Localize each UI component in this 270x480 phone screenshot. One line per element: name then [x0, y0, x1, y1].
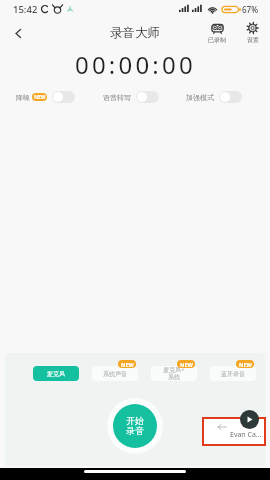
button[interactable]: Back — [6, 21, 30, 45]
button[interactable]: 降噪 — [16, 91, 75, 103]
other: Collapse — [217, 422, 227, 432]
staticText: 开始 录音 — [126, 415, 144, 437]
button[interactable]: 设置 — [244, 21, 261, 45]
staticText: 00:00:00 — [75, 48, 196, 76]
staticText: NEW — [34, 94, 46, 101]
staticText: 麦克风+ 系统 — [163, 366, 185, 381]
staticText: NEW — [121, 361, 134, 368]
button[interactable]: 语音转写 — [103, 91, 159, 103]
staticText: 语音转写 — [103, 93, 131, 102]
staticText: 录音大师 — [110, 25, 160, 41]
staticText: NEW — [180, 361, 193, 368]
button[interactable]: Play — [240, 410, 259, 429]
staticText: Evan Ca... — [230, 430, 262, 440]
staticText: 67% — [242, 4, 258, 15]
button[interactable]: 加强模式 — [186, 91, 242, 103]
staticText: NEW — [239, 361, 252, 368]
button[interactable]: 开始 录音 — [113, 404, 157, 448]
button[interactable]: Collapse — [204, 419, 264, 444]
button[interactable]: 蓝牙录音 — [210, 366, 256, 381]
button[interactable]: 系统声音 — [92, 366, 138, 381]
button[interactable]: 麦克风+ 系统 — [151, 366, 197, 381]
staticText: 系统声音 — [103, 370, 127, 378]
staticText: 降噪 — [16, 93, 30, 102]
staticText: 加强模式 — [186, 93, 214, 102]
button[interactable]: 麦克风 — [33, 366, 79, 381]
staticText: 蓝牙录音 — [221, 370, 245, 378]
staticText: 15:42 — [13, 3, 38, 16]
staticText: 已录制 — [208, 36, 226, 44]
staticText: 设置 — [247, 36, 259, 44]
staticText: 麦克风 — [47, 370, 65, 378]
button[interactable]: 已录制 — [206, 21, 228, 45]
